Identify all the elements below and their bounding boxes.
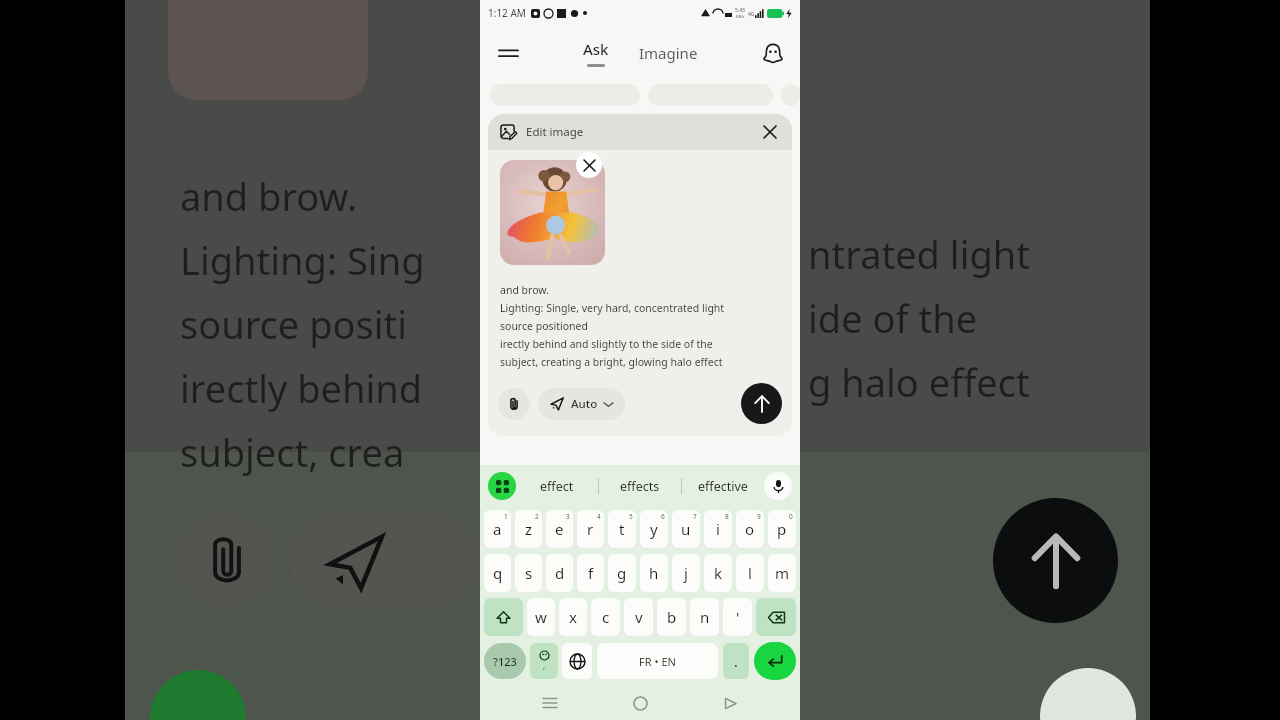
- staticText: effective: [698, 478, 748, 495]
- button[interactable]: t: [608, 510, 636, 548]
- staticText: b: [667, 607, 677, 627]
- staticText: 2: [535, 512, 539, 521]
- button[interactable]: s: [515, 554, 542, 592]
- staticText: ntrated light: [808, 228, 1031, 280]
- button[interactable]: x: [559, 598, 587, 636]
- staticText: 0: [789, 512, 793, 521]
- staticText: 4G: [748, 11, 755, 18]
- button[interactable]: v: [624, 598, 653, 636]
- button[interactable]: Send: [741, 383, 782, 424]
- button[interactable]: Home: [620, 686, 660, 720]
- staticText: p: [777, 519, 787, 539]
- staticText: 8: [725, 512, 729, 521]
- button[interactable]: e: [546, 510, 573, 548]
- button[interactable]: i: [704, 510, 732, 548]
- button[interactable]: Ask: [577, 36, 615, 70]
- staticText: Auto: [571, 396, 598, 412]
- staticText: Edit image: [526, 124, 584, 140]
- button[interactable]: Imagine: [633, 40, 704, 66]
- staticText: c: [602, 607, 610, 627]
- staticText: s: [525, 563, 533, 583]
- staticText: 7: [693, 512, 697, 521]
- staticText: g: [617, 563, 627, 583]
- staticText: effect: [540, 478, 574, 495]
- button[interactable]: w: [527, 598, 555, 636]
- staticText: 9: [757, 512, 761, 521]
- button[interactable]: effective: [682, 465, 764, 507]
- button[interactable]: [781, 84, 800, 106]
- staticText: ,: [543, 660, 546, 671]
- button[interactable]: Voice input: [764, 472, 792, 500]
- button[interactable]: ?123: [484, 643, 526, 679]
- staticText: and brow. Lighting: Single, very hard, c…: [500, 283, 725, 369]
- staticText: Ask: [583, 39, 609, 59]
- button[interactable]: p: [768, 510, 796, 548]
- button[interactable]: effects: [599, 465, 681, 507]
- button[interactable]: y: [640, 510, 668, 548]
- button[interactable]: ': [723, 598, 752, 636]
- staticText: and brow.: [180, 170, 358, 222]
- staticText: ?123: [493, 654, 517, 669]
- button[interactable]: f: [577, 554, 604, 592]
- staticText: Lighting: Sing: [180, 234, 425, 286]
- button[interactable]: effect: [516, 465, 598, 507]
- staticText: .: [734, 652, 738, 671]
- button[interactable]: [500, 160, 605, 265]
- staticText: i: [716, 519, 720, 539]
- button[interactable]: r: [577, 510, 604, 548]
- button[interactable]: Snapchat: [756, 36, 790, 70]
- button[interactable]: g: [608, 554, 636, 592]
- button[interactable]: Attach file: [498, 388, 530, 420]
- button[interactable]: Emoji: [530, 643, 558, 679]
- button[interactable]: k: [704, 554, 732, 592]
- button[interactable]: .: [723, 643, 749, 679]
- staticText: n: [700, 607, 710, 627]
- button[interactable]: j: [672, 554, 700, 592]
- staticText: subject, crea: [180, 426, 405, 478]
- staticText: FR • EN: [639, 654, 676, 669]
- button[interactable]: Auto: [538, 388, 625, 420]
- button[interactable]: Shift: [484, 598, 523, 636]
- staticText: 5: [629, 512, 633, 521]
- button[interactable]: Keyboard toolbar: [488, 472, 516, 500]
- button[interactable]: l: [736, 554, 764, 592]
- staticText: y: [650, 519, 658, 539]
- button[interactable]: Back: [710, 686, 750, 720]
- staticText: k: [714, 563, 723, 583]
- staticText: 5.43: [735, 7, 745, 14]
- button[interactable]: z: [515, 510, 542, 548]
- staticText: l: [748, 563, 752, 583]
- staticText: v: [635, 607, 643, 627]
- button[interactable]: m: [768, 554, 796, 592]
- button[interactable]: o: [736, 510, 764, 548]
- button[interactable]: u: [672, 510, 700, 548]
- button[interactable]: Close edit image: [760, 122, 780, 142]
- button[interactable]: n: [690, 598, 719, 636]
- button[interactable]: Backspace: [756, 598, 796, 636]
- staticText: g halo effect: [808, 356, 1030, 408]
- button[interactable]: h: [640, 554, 668, 592]
- staticText: KB/s: [736, 14, 745, 19]
- staticText: e: [555, 519, 564, 539]
- button[interactable]: d: [546, 554, 573, 592]
- staticText: ide of the: [808, 292, 978, 344]
- button[interactable]: b: [657, 598, 686, 636]
- staticText: 1: [504, 512, 508, 521]
- button[interactable]: Change language: [562, 643, 592, 679]
- button[interactable]: Recents: [530, 686, 570, 720]
- button[interactable]: Remove image: [576, 152, 602, 178]
- staticText: z: [525, 519, 533, 539]
- button[interactable]: Enter: [754, 642, 796, 680]
- button[interactable]: FR • EN: [597, 643, 718, 679]
- button[interactable]: c: [591, 598, 620, 636]
- staticText: source positi: [180, 298, 408, 350]
- button[interactable]: a: [484, 510, 511, 548]
- button[interactable]: Edit image: [488, 114, 792, 150]
- button[interactable]: q: [484, 554, 511, 592]
- staticText: 4: [597, 512, 601, 521]
- button[interactable]: Menu: [490, 35, 526, 71]
- staticText: w: [535, 607, 547, 627]
- staticText: t: [619, 519, 625, 539]
